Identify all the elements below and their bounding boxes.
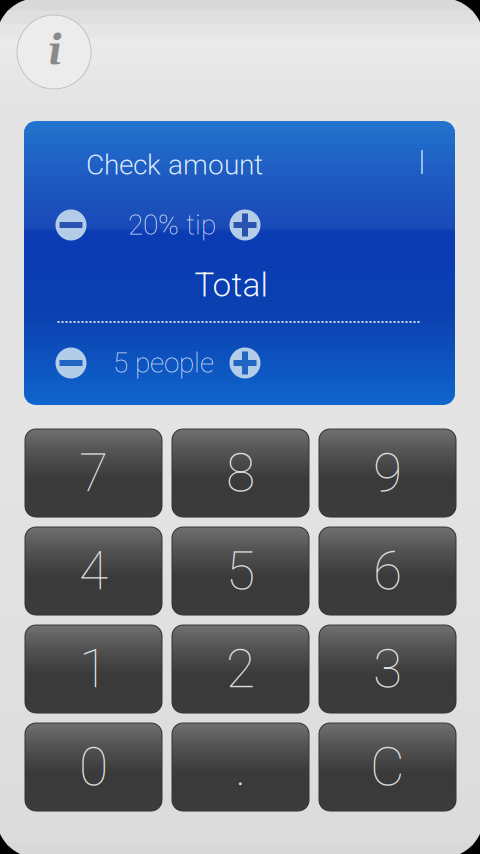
button[interactable]: . <box>172 723 309 811</box>
button[interactable]: 5 <box>172 527 309 615</box>
staticText: Check amount <box>86 149 263 181</box>
staticText: . <box>235 736 246 798</box>
button[interactable]: Decrease <box>55 209 86 240</box>
button[interactable]: Increase <box>229 347 260 378</box>
button[interactable]: 9 <box>319 429 456 517</box>
staticText: 5 people <box>113 347 214 379</box>
staticText: 9 <box>373 442 402 504</box>
staticText: 3 <box>373 638 402 700</box>
button[interactable]: 8 <box>172 429 309 517</box>
button[interactable]: 6 <box>319 527 456 615</box>
staticText: 0 <box>79 736 108 798</box>
button[interactable]: 1 <box>25 625 162 713</box>
button[interactable]: Decrease <box>55 347 86 378</box>
staticText: 7 <box>79 442 108 504</box>
staticText: 6 <box>373 540 402 602</box>
staticText: Total <box>194 265 267 305</box>
button[interactable]: 7 <box>25 429 162 517</box>
staticText: i <box>47 25 63 79</box>
button[interactable]: 4 <box>25 527 162 615</box>
button[interactable]: 0 <box>25 723 162 811</box>
staticText: 5 <box>226 540 255 602</box>
staticText: 4 <box>79 540 108 602</box>
staticText: 20% tip <box>128 209 216 241</box>
staticText: 8 <box>226 442 255 504</box>
button[interactable]: C <box>319 723 456 811</box>
staticText: 2 <box>226 638 255 700</box>
staticText: 1 <box>79 638 108 700</box>
button[interactable]: 3 <box>319 625 456 713</box>
button[interactable]: Info <box>17 15 91 89</box>
button[interactable]: 2 <box>172 625 309 713</box>
staticText: C <box>370 736 405 798</box>
button[interactable]: Increase <box>229 209 260 240</box>
